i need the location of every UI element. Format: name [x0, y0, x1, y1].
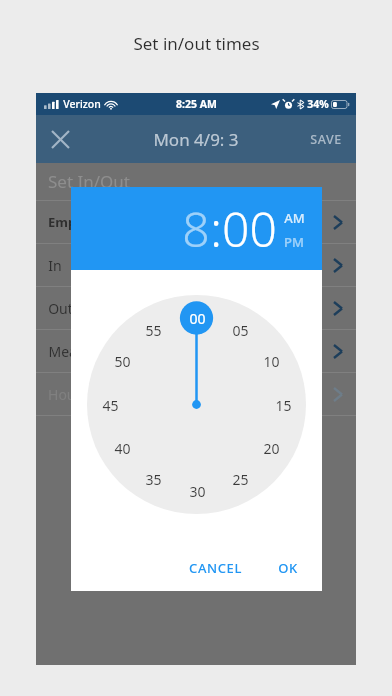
button[interactable]: AM: [284, 209, 305, 227]
button[interactable]: SAVE: [296, 115, 356, 163]
button[interactable]: 8: [182, 196, 210, 261]
staticText: 34%: [307, 97, 329, 111]
button[interactable]: 35: [139, 469, 167, 489]
staticText: 8:25 AM: [176, 97, 217, 111]
button[interactable]: 25: [226, 469, 254, 489]
staticText: OK: [278, 559, 298, 577]
button[interactable]: 45: [96, 395, 124, 415]
button[interactable]: OK: [268, 551, 308, 585]
staticText: 10: [263, 352, 280, 371]
staticText: Set in/out times: [133, 32, 260, 55]
button[interactable]: 15: [269, 395, 297, 415]
button[interactable]: Employee: [36, 201, 356, 243]
staticText: Hours: [48, 385, 88, 404]
staticText: In: [48, 256, 62, 275]
staticText: 50: [114, 352, 131, 371]
button[interactable]: 00: [183, 308, 211, 328]
button[interactable]: Close: [36, 115, 84, 163]
staticText: 30: [189, 482, 206, 501]
staticText: Verizon: [63, 97, 101, 111]
staticText: 15: [275, 396, 292, 415]
staticText: SAVE: [310, 131, 342, 148]
button[interactable]: Meal: [36, 330, 356, 372]
staticText: 45: [102, 396, 119, 415]
staticText: 55: [145, 321, 162, 340]
button[interactable]: 50: [108, 351, 136, 371]
button[interactable]: 20: [257, 438, 285, 458]
button[interactable]: 10: [257, 351, 285, 371]
button[interactable]: CANCEL: [179, 551, 252, 585]
staticText: Out: [48, 299, 73, 318]
staticText: 40: [114, 439, 131, 458]
button[interactable]: 55: [139, 320, 167, 340]
button[interactable]: 40: [108, 438, 136, 458]
staticText: 05: [232, 321, 249, 340]
button[interactable]: Hours: [36, 373, 356, 415]
staticText: 25: [232, 470, 249, 489]
button[interactable]: PM: [284, 233, 304, 251]
button[interactable]: 30: [183, 481, 211, 501]
staticText: Mon 4/9: 3: [153, 128, 239, 151]
staticText: 20: [263, 439, 280, 458]
staticText: PM: [284, 233, 304, 251]
staticText: 35: [145, 470, 162, 489]
button[interactable]: 05: [226, 320, 254, 340]
button[interactable]: In: [36, 244, 356, 286]
staticText: 00: [222, 196, 277, 261]
button[interactable]: Out: [36, 287, 356, 329]
staticText: 8: [182, 196, 210, 261]
staticText: 00: [189, 309, 206, 328]
button[interactable]: 00: [222, 196, 277, 261]
staticText: CANCEL: [189, 559, 242, 577]
staticText: Meal: [48, 342, 81, 361]
staticText: AM: [284, 209, 305, 227]
staticText: Set In/Out: [48, 170, 130, 193]
staticText: Employee: [48, 213, 111, 231]
staticText: :: [210, 196, 222, 261]
